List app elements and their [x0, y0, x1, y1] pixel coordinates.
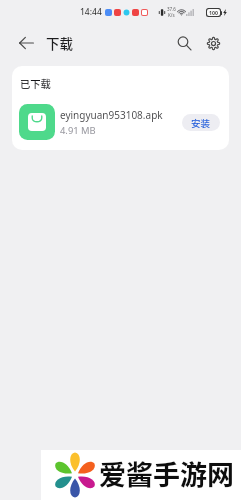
staticText: 14:44 — [80, 6, 102, 18]
staticText: K/s — [168, 12, 175, 18]
staticText: 已下载 — [20, 76, 51, 91]
staticText: 爱酱手游网 — [99, 454, 234, 493]
button[interactable]: Back — [13, 30, 39, 56]
staticText: 37.6 — [167, 6, 176, 12]
staticText: 100 — [209, 9, 218, 16]
staticText: 4.91 MB — [60, 124, 96, 137]
staticText: 下载 — [46, 33, 73, 53]
button[interactable]: eyingyuan953108.apk — [12, 94, 229, 150]
button[interactable]: 安装 — [182, 114, 220, 131]
staticText: eyingyuan953108.apk — [60, 108, 163, 122]
staticText: 安装 — [191, 116, 211, 130]
button[interactable]: Settings — [201, 31, 225, 55]
button[interactable]: Search — [172, 31, 196, 55]
